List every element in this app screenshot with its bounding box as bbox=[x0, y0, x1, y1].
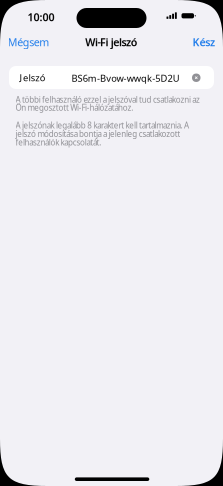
button[interactable]: Kész bbox=[192, 33, 216, 51]
staticText: felhasználók kapcsolatát. bbox=[15, 137, 101, 148]
staticText: Ön megosztott Wi-Fi-hálózatához. bbox=[15, 102, 133, 113]
staticText: jelszó módosítása bontja a jelenleg csat… bbox=[15, 129, 180, 139]
staticText: Kész bbox=[193, 35, 215, 49]
staticText: BS6m-Bvow-wwqk-5D2U bbox=[71, 72, 180, 84]
staticText: A többi felhasználó ezzel a jelszóval tu… bbox=[15, 94, 200, 105]
staticText: Mégsem bbox=[8, 35, 49, 49]
button[interactable]: Mégsem bbox=[7, 33, 50, 51]
staticText: 10:00 bbox=[27, 10, 54, 24]
button[interactable]: Clear password bbox=[192, 73, 200, 82]
staticText: Wi-Fi jelszó bbox=[85, 35, 138, 49]
staticText: Jelszó bbox=[19, 71, 46, 84]
staticText: A jelszónak legalább 8 karaktert kell ta… bbox=[15, 120, 189, 131]
